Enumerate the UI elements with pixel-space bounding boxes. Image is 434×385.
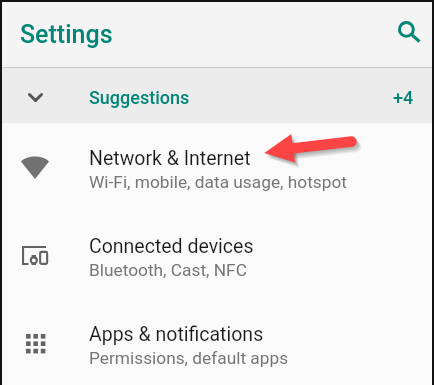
button[interactable]: Suggestions (2, 68, 432, 123)
staticText: Apps & notifications (89, 323, 264, 346)
staticText: Wi-Fi, mobile, data usage, hotspot (89, 172, 348, 192)
staticText: Settings (20, 20, 113, 49)
button[interactable]: Apps & notifications (2, 299, 432, 385)
button[interactable]: Search (389, 12, 429, 52)
staticText: Permissions, default apps (89, 348, 289, 368)
staticText: Network & Internet (89, 147, 251, 170)
button[interactable]: Network & Internet (2, 123, 432, 211)
button[interactable]: Connected devices (2, 211, 432, 299)
staticText: Connected devices (89, 235, 254, 258)
staticText: Bluetooth, Cast, NFC (89, 260, 247, 280)
staticText: +4 (393, 87, 414, 108)
staticText: Suggestions (89, 87, 190, 108)
